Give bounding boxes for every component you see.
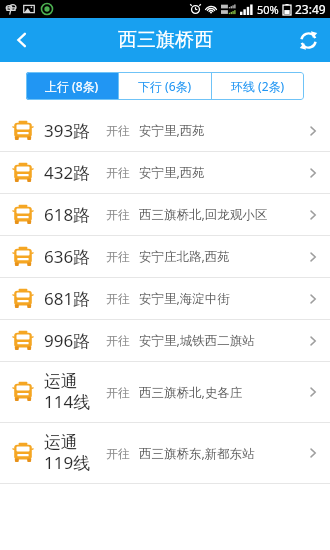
button[interactable]: 393路 [0,110,330,151]
staticText: 安宁里,西苑 [139,122,205,139]
button[interactable]: 运通119线 [0,423,330,483]
button[interactable]: 432路 [0,152,330,193]
staticText: 上行 (8条) [45,78,99,94]
staticText: 50% [257,2,279,17]
staticText: 西三旗桥东,新都东站 [139,445,255,462]
staticText: 西三旗桥西 [118,28,213,52]
staticText: 运通119线 [44,432,98,474]
staticText: 636路 [44,245,91,268]
staticText: 681路 [44,287,91,310]
staticText: 安宁里,城铁西二旗站 [139,332,255,349]
staticText: 开往 [106,385,130,400]
staticText: 23:49 [295,1,326,17]
button[interactable]: 环线 (2条) [212,72,304,100]
staticText: 运通114线 [44,371,98,413]
button[interactable]: 上行 (8条) [26,72,118,100]
button[interactable]: 681路 [0,278,330,319]
staticText: 安宁里,西苑 [139,164,205,181]
staticText: 开往 [106,165,130,180]
staticText: 安宁里,海淀中街 [139,290,230,307]
staticText: 安宁庄北路,西苑 [139,248,230,265]
button[interactable]: Refresh [286,18,330,62]
staticText: 开往 [106,291,130,306]
staticText: 618路 [44,203,91,226]
staticText: 开往 [106,123,130,138]
staticText: 开往 [106,249,130,264]
button[interactable]: Back [0,18,44,62]
button[interactable]: 下行 (6条) [119,72,211,100]
staticText: 开往 [106,333,130,348]
staticText: 432路 [44,161,91,184]
staticText: 环线 (2条) [231,78,285,94]
button[interactable]: 636路 [0,236,330,277]
staticText: 开往 [106,207,130,222]
button[interactable]: 996路 [0,320,330,361]
staticText: 西三旗桥北,史各庄 [139,384,243,401]
button[interactable]: 618路 [0,194,330,235]
staticText: 393路 [44,119,91,142]
staticText: 开往 [106,446,130,461]
staticText: 下行 (6条) [138,78,192,94]
staticText: 西三旗桥北,回龙观小区 [139,206,268,223]
button[interactable]: 运通114线 [0,362,330,422]
staticText: 996路 [44,329,91,352]
